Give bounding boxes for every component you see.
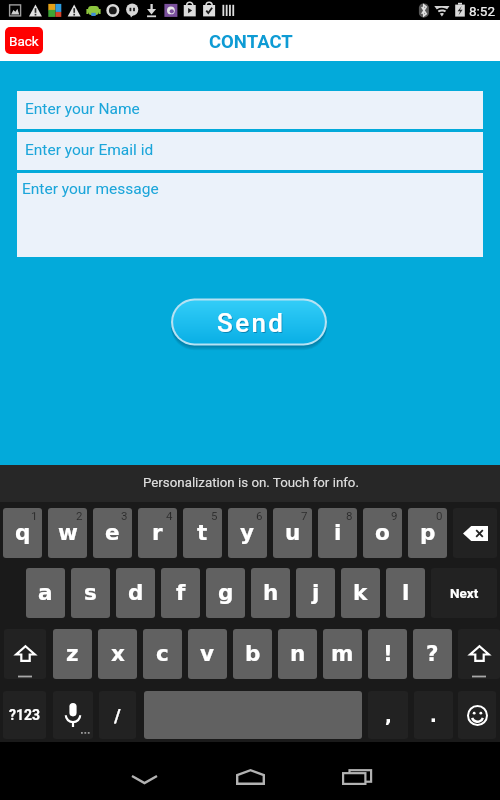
- button[interactable]: h: [251, 568, 290, 618]
- staticText: x: [111, 641, 125, 666]
- staticText: s: [84, 580, 97, 605]
- staticText: 1: [31, 509, 38, 522]
- staticText: Send: [218, 309, 287, 339]
- button[interactable]: ?: [413, 629, 452, 679]
- button[interactable]: 8: [318, 508, 357, 558]
- button[interactable]: l: [386, 568, 425, 618]
- button[interactable]: Backspace: [453, 508, 497, 558]
- staticText: Back: [9, 33, 39, 49]
- button[interactable]: v: [188, 629, 227, 679]
- staticText: m: [331, 641, 354, 666]
- staticText: .: [430, 705, 437, 726]
- staticText: g: [218, 580, 234, 605]
- button[interactable]: k: [341, 568, 380, 618]
- button[interactable]: m: [323, 629, 362, 679]
- button[interactable]: Send: [169, 294, 329, 350]
- staticText: ?: [426, 641, 439, 666]
- button[interactable]: 2: [48, 508, 87, 558]
- staticText: e: [105, 520, 120, 545]
- button[interactable]: Enter your Name: [17, 91, 483, 129]
- button[interactable]: a: [26, 568, 65, 618]
- button[interactable]: x: [98, 629, 137, 679]
- button[interactable]: z: [53, 629, 92, 679]
- staticText: d: [128, 580, 144, 605]
- button[interactable]: d: [116, 568, 155, 618]
- staticText: 8: [346, 509, 353, 522]
- staticText: Enter your Name: [25, 100, 140, 118]
- button[interactable]: j: [296, 568, 335, 618]
- button[interactable]: 3: [93, 508, 132, 558]
- button[interactable]: 9: [363, 508, 402, 558]
- staticText: v: [200, 641, 215, 666]
- button[interactable]: Recent apps: [327, 757, 387, 800]
- button[interactable]: Emoji: [458, 691, 496, 739]
- staticText: l: [402, 580, 410, 605]
- staticText: o: [375, 520, 390, 545]
- staticText: ,: [385, 705, 392, 726]
- staticText: Enter your Email id: [25, 141, 154, 159]
- staticText: a: [38, 580, 53, 605]
- staticText: y: [240, 520, 255, 545]
- staticText: CONTACT: [209, 31, 293, 53]
- staticText: !: [383, 641, 393, 666]
- staticText: 0: [436, 509, 443, 522]
- staticText: q: [15, 520, 31, 545]
- button[interactable]: Back: [5, 27, 43, 54]
- staticText: /: [114, 705, 121, 726]
- staticText: Next: [450, 585, 479, 601]
- button[interactable]: !: [368, 629, 407, 679]
- staticText: p: [420, 520, 436, 545]
- staticText: u: [285, 520, 301, 545]
- staticText: Personalization is on. Touch for info.: [143, 475, 359, 491]
- staticText: Send: [217, 308, 286, 338]
- button[interactable]: 4: [138, 508, 177, 558]
- button[interactable]: n: [278, 629, 317, 679]
- button[interactable]: /: [99, 691, 136, 739]
- button[interactable]: f: [161, 568, 200, 618]
- staticText: j: [312, 580, 320, 605]
- staticText: k: [353, 580, 368, 605]
- staticText: i: [334, 520, 342, 545]
- staticText: 9: [391, 509, 398, 522]
- staticText: b: [245, 641, 261, 666]
- button[interactable]: 6: [228, 508, 267, 558]
- staticText: 5: [211, 509, 218, 522]
- staticText: Enter your message: [22, 180, 159, 198]
- button[interactable]: Next: [431, 568, 497, 618]
- button[interactable]: ,: [368, 691, 408, 739]
- staticText: f: [176, 580, 186, 605]
- button[interactable]: Shift: [4, 629, 46, 679]
- button[interactable]: b: [233, 629, 272, 679]
- button[interactable]: ?123: [3, 691, 46, 739]
- staticText: z: [66, 641, 79, 666]
- staticText: n: [290, 641, 306, 666]
- button[interactable]: 7: [273, 508, 312, 558]
- staticText: h: [263, 580, 279, 605]
- staticText: ?123: [9, 707, 41, 723]
- button[interactable]: c: [143, 629, 182, 679]
- button[interactable]: Personalization is on. Touch for info.: [0, 465, 500, 502]
- staticText: 7: [301, 509, 308, 522]
- staticText: 2: [76, 509, 83, 522]
- button[interactable]: Enter your message: [17, 173, 483, 257]
- staticText: 6: [256, 509, 263, 522]
- staticText: c: [156, 641, 169, 666]
- staticText: t: [197, 520, 208, 545]
- button[interactable]: 1: [3, 508, 42, 558]
- staticText: r: [152, 520, 163, 545]
- staticText: 3: [121, 509, 128, 522]
- staticText: w: [58, 520, 78, 545]
- staticText: 4: [166, 509, 173, 522]
- button[interactable]: g: [206, 568, 245, 618]
- button[interactable]: s: [71, 568, 110, 618]
- button[interactable]: Back: [114, 757, 174, 800]
- button[interactable]: 5: [183, 508, 222, 558]
- button[interactable]: Shift: [458, 629, 500, 679]
- button[interactable]: 0: [408, 508, 447, 558]
- button[interactable]: Voice input: [53, 691, 93, 739]
- button[interactable]: Home: [220, 757, 280, 800]
- staticText: 8:52: [469, 3, 496, 19]
- button[interactable]: Enter your Email id: [17, 132, 483, 170]
- button[interactable]: .: [414, 691, 453, 739]
